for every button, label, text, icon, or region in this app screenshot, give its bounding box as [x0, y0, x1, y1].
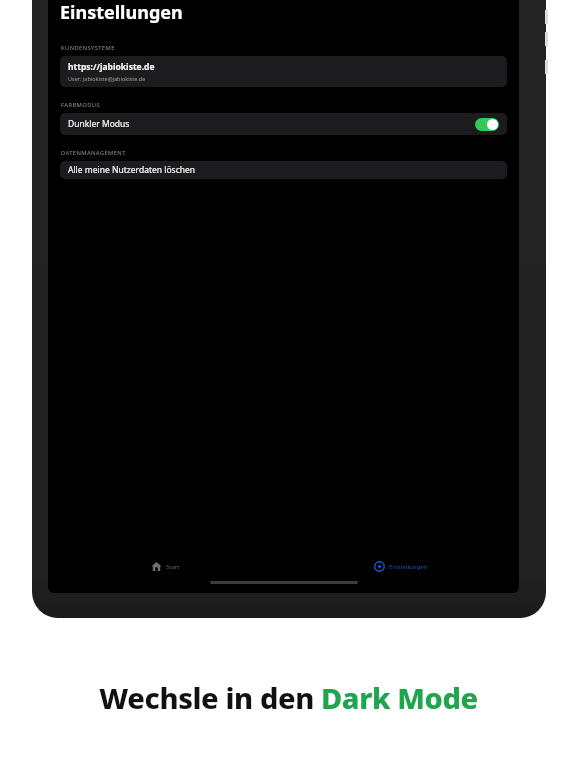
staticText: Alle meine Nutzerdaten löschen: [68, 164, 196, 176]
button[interactable]: Einstellungen: [370, 559, 432, 574]
staticText: DATENMANAGEMENT: [61, 149, 126, 157]
button[interactable]: https://jabiokiste.de: [60, 56, 507, 87]
button[interactable]: Alle meine Nutzerdaten löschen: [60, 161, 507, 179]
staticText: KUNDENSYSTEME: [61, 44, 115, 52]
staticText: User: jabiokiste@jabiokiste.de: [68, 75, 146, 82]
button[interactable]: Dunkler Modus umschalten: [475, 118, 499, 131]
staticText: Dunkler Modus: [68, 118, 130, 130]
staticText: Start: [166, 563, 180, 571]
staticText: Einstellungen: [389, 563, 428, 571]
staticText: Wechsle in den Dark Mode: [99, 678, 478, 717]
staticText: FARBMODUS: [61, 101, 101, 109]
staticText: Einstellungen: [60, 0, 183, 25]
button[interactable]: Start: [147, 559, 184, 574]
button[interactable]: Dunkler Modus: [60, 113, 507, 135]
staticText: https://jabiokiste.de: [68, 61, 155, 73]
